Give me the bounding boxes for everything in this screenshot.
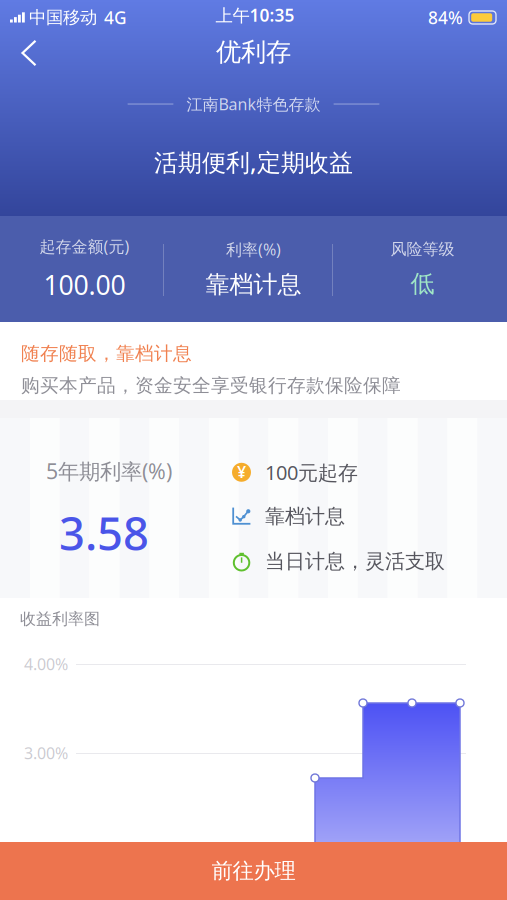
staticText: 靠档计息 <box>205 270 301 299</box>
button[interactable]: 返回 <box>0 30 58 76</box>
staticText: 当日计息，灵活支取 <box>265 549 445 574</box>
staticText: 起存金额(元) <box>39 236 129 257</box>
staticText: 购买本产品，资金安全享受银行存款保险保障 <box>21 374 401 397</box>
staticText: 3.58 <box>59 503 149 563</box>
staticText: 5年期利率(%) <box>46 457 172 485</box>
staticText: 4G <box>104 6 127 29</box>
staticText: 靠档计息 <box>265 504 345 529</box>
staticText: 上午10:35 <box>215 3 294 26</box>
staticText: 100元起存 <box>265 459 358 486</box>
button[interactable]: 前往办理 <box>0 842 507 900</box>
staticText: 收益利率图 <box>20 609 100 629</box>
staticText: 江南Bank特色存款 <box>186 93 320 115</box>
staticText: 中国移动 <box>29 7 97 28</box>
staticText: 84% <box>428 6 463 29</box>
staticText: 活期便利,定期收益 <box>154 146 353 178</box>
staticText: 低 <box>410 269 434 299</box>
staticText: 优利存 <box>216 36 291 67</box>
staticText: 利率(%) <box>226 239 281 260</box>
staticText: 前往办理 <box>211 858 295 884</box>
staticText: 风险等级 <box>390 239 454 259</box>
staticText: 100.00 <box>43 267 125 302</box>
staticText: 随存随取，靠档计息 <box>21 342 192 365</box>
staticText: ¥ <box>237 461 246 482</box>
staticText: 3.00% <box>24 742 68 764</box>
staticText: 4.00% <box>24 653 68 675</box>
